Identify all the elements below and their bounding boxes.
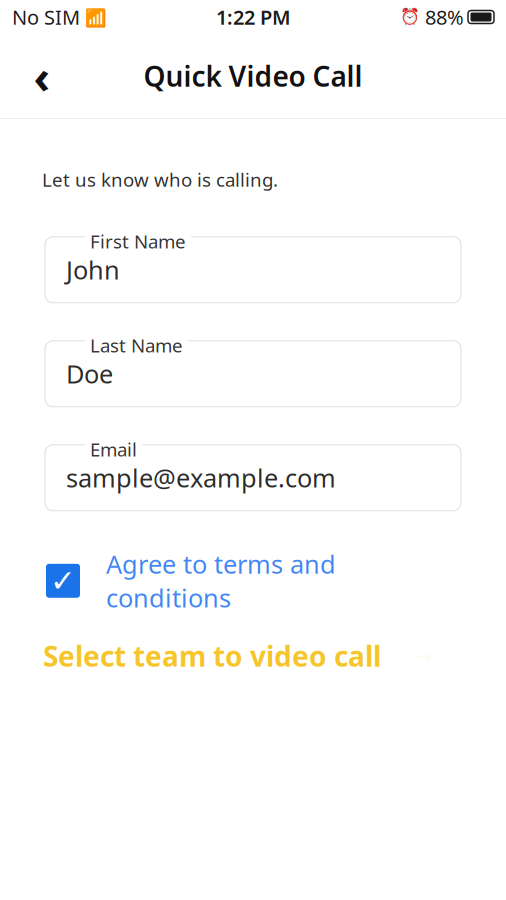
staticText: First Name (90, 229, 186, 254)
staticText: No SIM (12, 4, 80, 30)
staticText: Email (90, 437, 137, 462)
staticText: Select team to video call (43, 637, 381, 674)
button[interactable]: ✓ (0, 558, 506, 604)
staticText: → (411, 641, 432, 670)
button[interactable]: Back (20, 54, 64, 98)
staticText: 88% (420, 4, 464, 30)
staticText: Quick Video Call (143, 57, 362, 95)
staticText: Doe (66, 357, 113, 391)
staticText: sample@example.com (66, 461, 336, 495)
staticText: John (66, 253, 120, 287)
staticText: 📶 (80, 5, 107, 28)
staticText: Agree to terms and conditions (106, 547, 336, 614)
staticText: Let us know who is calling. (42, 167, 278, 192)
staticText: 1:22 PM (216, 4, 291, 30)
staticText: ✓ (50, 563, 76, 598)
staticText: ‹ (33, 46, 50, 106)
button[interactable]: Select team to video call (0, 634, 506, 678)
staticText: Last Name (90, 333, 183, 358)
staticText: ⏰ (400, 8, 420, 26)
